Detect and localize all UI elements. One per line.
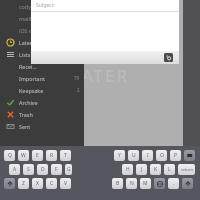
button[interactable]: Q — [4, 150, 15, 161]
staticText: Lists — [19, 51, 31, 58]
button[interactable]: N — [126, 178, 137, 189]
button[interactable]: codyp... — [0, 0, 84, 12]
staticText: D — [41, 166, 45, 173]
staticText: codyp... — [19, 3, 39, 10]
staticText: B — [116, 180, 120, 187]
button[interactable]: iOS m... — [0, 24, 84, 36]
button[interactable]: I — [142, 150, 153, 161]
button[interactable]: Sent — [0, 120, 84, 132]
staticText: F — [55, 166, 58, 173]
staticText: Archive — [19, 99, 38, 106]
button[interactable]: H — [122, 164, 133, 175]
staticText: Subject: — [36, 2, 55, 9]
staticText: 2 — [77, 87, 80, 93]
staticText: K — [154, 166, 158, 173]
button[interactable]: . — [168, 178, 179, 189]
staticText: U — [132, 152, 136, 159]
button[interactable]: S — [23, 164, 34, 175]
staticText: Keepsake — [19, 87, 44, 94]
staticText: E — [36, 152, 39, 159]
staticText: 79 — [74, 75, 80, 81]
button[interactable]: Archive — [0, 96, 84, 108]
button[interactable]: L — [164, 164, 175, 175]
button[interactable]: Trash — [0, 108, 84, 120]
button[interactable]: Later — [0, 36, 84, 48]
staticText: O — [160, 152, 164, 159]
button[interactable]: W — [18, 150, 29, 161]
staticText: . — [173, 180, 175, 187]
staticText: Important — [19, 75, 45, 82]
button[interactable]: del — [184, 150, 195, 161]
staticText: V — [64, 180, 68, 187]
button[interactable]: shift — [182, 178, 193, 189]
button[interactable]: A — [9, 164, 20, 175]
staticText: P — [174, 152, 178, 159]
staticText: Later — [19, 39, 33, 46]
button[interactable]: B — [112, 178, 123, 189]
staticText: return — [181, 167, 193, 172]
staticText: Settings — [19, 146, 40, 153]
staticText: W — [21, 152, 26, 159]
staticText: Trash — [19, 111, 33, 118]
button[interactable]: E — [32, 150, 43, 161]
button[interactable]: T — [60, 150, 71, 161]
staticText: Z — [22, 180, 25, 187]
button[interactable]: C — [46, 178, 57, 189]
button[interactable]: mailb... — [0, 12, 84, 24]
button[interactable]: G — [65, 164, 72, 175]
staticText: M — [143, 180, 148, 187]
button[interactable]: Keepsake — [0, 84, 84, 96]
staticText: R — [50, 152, 54, 159]
staticText: T — [64, 152, 67, 159]
staticText: Y — [118, 152, 121, 159]
button[interactable]: Lists — [0, 48, 84, 60]
staticText: A — [13, 166, 17, 173]
button[interactable]: Y — [114, 150, 125, 161]
button[interactable]: V — [60, 178, 71, 189]
button[interactable]: M — [140, 178, 151, 189]
staticText: C — [50, 180, 54, 187]
staticText: J — [141, 166, 143, 173]
button[interactable]: X — [32, 178, 43, 189]
staticText: G — [67, 166, 71, 173]
button[interactable]: D — [37, 164, 48, 175]
button[interactable]: Z — [18, 178, 29, 189]
button[interactable]: J — [136, 164, 147, 175]
button[interactable]: O — [156, 150, 167, 161]
staticText: Sent — [19, 123, 31, 130]
staticText: H — [126, 166, 130, 173]
staticText: X — [36, 180, 39, 187]
button[interactable]: Subject: — [31, 0, 179, 11]
button[interactable]: globe — [154, 178, 165, 189]
button[interactable]: shift — [4, 178, 15, 189]
button[interactable]: F — [51, 164, 62, 175]
button[interactable]: R — [46, 150, 57, 161]
staticText: iOS m... — [19, 27, 39, 34]
staticText: mailb... — [19, 15, 38, 22]
button[interactable]: Attach photo — [164, 53, 173, 62]
button[interactable]: return — [178, 164, 195, 175]
staticText: S — [27, 166, 30, 173]
button[interactable]: P — [170, 150, 181, 161]
staticText: I — [147, 152, 149, 159]
staticText: LATER — [71, 64, 130, 87]
button[interactable]: Settings — [0, 143, 84, 155]
button[interactable]: K — [150, 164, 161, 175]
button[interactable]: Important — [0, 72, 84, 84]
staticText: Q — [8, 152, 12, 159]
staticText: L — [168, 166, 171, 173]
staticText: N — [130, 180, 134, 187]
staticText: Recei... — [19, 63, 37, 70]
button[interactable]: Recei... — [0, 60, 84, 72]
button[interactable]: U — [128, 150, 139, 161]
